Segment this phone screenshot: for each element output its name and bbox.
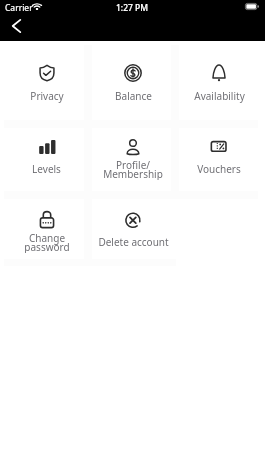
staticText: Privacy [30,89,64,103]
button[interactable]: Levels [3,114,90,187]
staticText: 1:27 PM [116,2,149,14]
button[interactable]: Balance [90,41,176,114]
staticText: Carrier [5,2,33,14]
staticText: Availability [194,89,245,103]
staticText: Profile/ Membership [103,158,163,180]
button[interactable]: Back [3,13,29,39]
button[interactable]: Availability [176,41,262,114]
staticText: Vouchers [197,162,241,176]
staticText: Levels [32,162,61,176]
staticText: Change password [24,231,70,253]
staticText: Balance [115,89,152,103]
button[interactable]: Privacy [3,41,90,114]
button[interactable]: Vouchers [176,114,262,187]
button[interactable]: Change password [3,187,90,260]
button[interactable]: Delete account [90,187,176,260]
staticText: Delete account [98,235,169,249]
button[interactable]: Profile/ Membership [90,114,176,187]
